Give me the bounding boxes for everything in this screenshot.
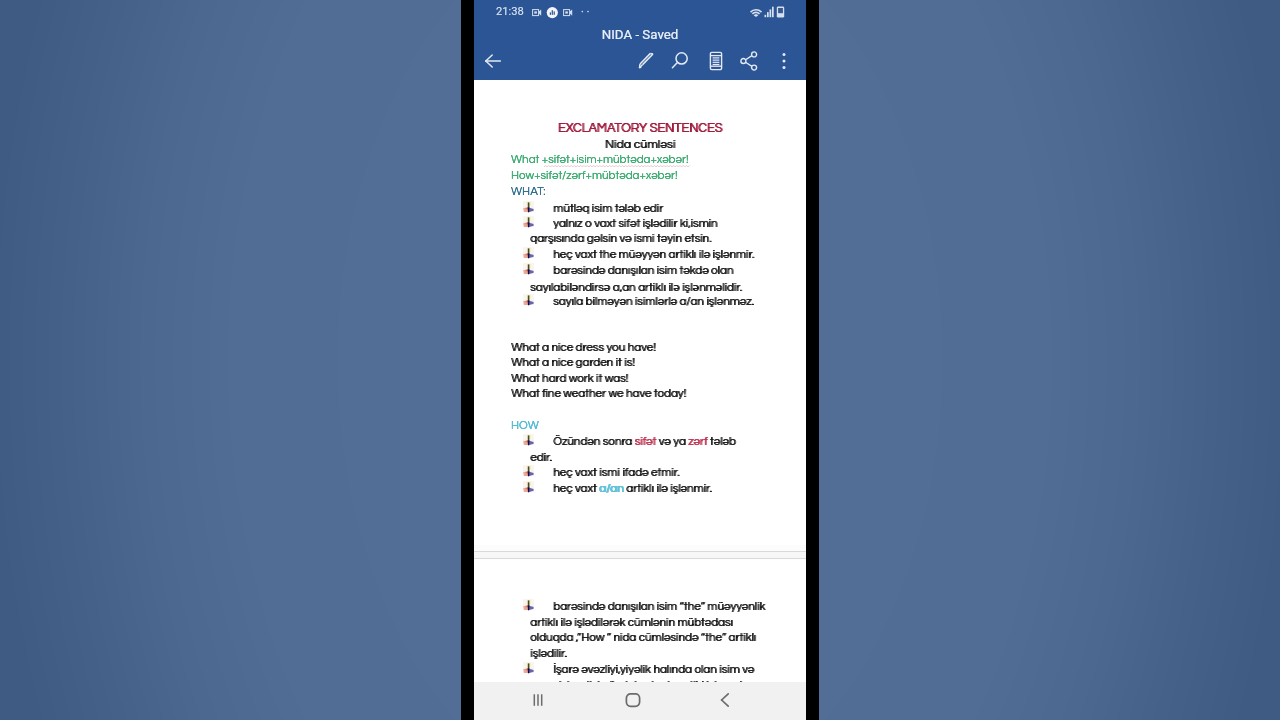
staticText: What a nice dress you have! [512, 341, 657, 353]
staticText: İşarə əvəzliyi,yiyəlik halında olan isim… [554, 663, 755, 675]
staticText: onun işləndiyi cümlələrdə də artikl işlə… [530, 679, 748, 691]
staticText: sayılabilәndirsә a,an artiklı ilә işlәnm… [531, 279, 743, 295]
staticText: artiklı ilə işlədilərək cümlənin mübtəda… [530, 616, 733, 628]
staticText: sayıla bilməyən isimlərlə a/an işlənməz. [553, 295, 754, 307]
staticText: What fine weather we have today! [512, 387, 687, 399]
staticText: EXCLAMATORY SENTENCES [475, 122, 807, 135]
staticText: barəsində danışılan isim “the” müəyyənli… [554, 600, 767, 612]
staticText: onun işləndiyi cümlələrdə də artikl işlə… [531, 679, 749, 691]
staticText: mütləq isim tələb edir [554, 202, 664, 214]
staticText: What a nice garden it is! [511, 356, 635, 368]
staticText: Özündən sonra sifət və ya zərf tələb [554, 435, 737, 447]
button[interactable]: Home [619, 682, 663, 720]
staticText: mütləq isim tələb edir [553, 202, 663, 214]
staticText: sayıla bilməyən isimlərlə a/an işlənməz. [554, 295, 755, 307]
staticText: What +sifət+isim+mübtəda+xəbər! [511, 153, 689, 165]
staticText: Nida cümləsi [475, 138, 807, 151]
staticText: olduqda ,”How ” nida cümləsində “the” ar… [530, 631, 756, 643]
staticText: barəsində danışılan isim “the” müəyyənli… [553, 600, 766, 612]
staticText: sayılabilәndirsә a,an artiklı ilә işlәnm… [530, 279, 742, 295]
staticText: How+sifət/zərf+mübtəda+xəbər! [511, 169, 678, 181]
staticText: heç vaxt the müəyyən artiklı ilə işlənmi… [554, 248, 755, 260]
staticText: sayılabilәndirsә a,an artiklı ilә işlәnm… [530, 279, 742, 295]
staticText: yalnız o vaxt sifət işlədilir ki,ismin [553, 217, 718, 229]
staticText: qarşısında gəlsin və ismi təyin etsin. [530, 232, 712, 244]
staticText: 21:38 [496, 5, 524, 18]
staticText: Özündən sonra sifət və ya zərf tələb [553, 435, 736, 447]
staticText: What fine weather we have today! [511, 387, 686, 399]
staticText: barəsində danışılan isim təkdə olan [553, 264, 734, 276]
staticText: What a nice dress you have! [511, 341, 656, 353]
button[interactable]: Back [479, 47, 507, 75]
staticText: What hard work it was! [511, 372, 629, 384]
staticText: EXCLAMATORY SENTENCES [474, 122, 806, 135]
staticText: How+sifət/zərf+mübtəda+xəbər! [511, 169, 678, 181]
staticText: artiklı ilə işlədilərək cümlənin mübtəda… [530, 616, 733, 628]
staticText: işlədilir. [530, 647, 567, 659]
staticText: olduqda ,”How ” nida cümləsində “the” ar… [531, 631, 757, 643]
staticText: What a nice garden it is! [512, 356, 636, 368]
staticText: işlədilir. [530, 647, 567, 659]
staticText: edir. [530, 451, 552, 463]
staticText: qarşısında gəlsin və ismi təyin etsin. [530, 232, 712, 244]
staticText: What fine weather we have today! [511, 387, 686, 399]
button[interactable]: Mobile view [702, 47, 730, 75]
button[interactable]: Search [666, 47, 694, 75]
staticText: EXCLAMATORY SENTENCES [474, 122, 806, 135]
staticText: heç vaxt ismi ifadə etmir. [553, 466, 680, 478]
staticText: İşarə əvəzliyi,yiyəlik halında olan isim… [553, 663, 754, 675]
staticText: Nida cümləsi [474, 138, 806, 151]
staticText: heç vaxt the müəyyən artiklı ilə işlənmi… [553, 248, 754, 260]
staticText: barəsində danışılan isim təkdə olan [553, 264, 734, 276]
staticText: What a nice garden it is! [511, 356, 635, 368]
staticText: What a nice dress you have! [511, 341, 656, 353]
staticText: işlədilir. [531, 647, 568, 659]
staticText: What +sifət+isim+mübtəda+xəbər! [511, 153, 689, 165]
staticText: onun işləndiyi cümlələrdə də artikl işlə… [530, 679, 748, 691]
staticText: What hard work it was! [511, 372, 629, 384]
button[interactable]: Share [735, 47, 763, 75]
staticText: Özündən sonra sifət və ya zərf tələb [553, 435, 736, 447]
button[interactable]: Edit [633, 47, 661, 75]
staticText: heç vaxt ismi ifadə etmir. [553, 466, 680, 478]
staticText: WHAT: [511, 185, 546, 197]
staticText: HOW [511, 419, 539, 431]
staticText: heç vaxt a/an artiklı ilə işlənmir. [553, 482, 712, 494]
staticText: yalnız o vaxt sifət işlədilir ki,ismin [553, 217, 718, 229]
staticText: HOW [511, 419, 539, 431]
button[interactable]: Recents [526, 682, 570, 720]
staticText: heç vaxt a/an artiklı ilə işlənmir. [553, 482, 712, 494]
staticText: yalnız o vaxt sifət işlədilir ki,ismin [554, 217, 719, 229]
staticText: What hard work it was! [512, 372, 630, 384]
staticText: İşarə əvəzliyi,yiyəlik halında olan isim… [553, 663, 754, 675]
staticText: Nida cümləsi [474, 138, 806, 151]
button[interactable]: More options [770, 47, 798, 75]
staticText: edir. [531, 451, 553, 463]
staticText: edir. [530, 451, 552, 463]
staticText: heç vaxt a/an artiklı ilə işlənmir. [554, 482, 713, 494]
staticText: artiklı ilə işlədilərək cümlənin mübtəda… [531, 616, 734, 628]
staticText: barəsində danışılan isim təkdə olan [554, 264, 735, 276]
staticText: sayıla bilməyən isimlərlə a/an işlənməz. [553, 295, 754, 307]
staticText: NIDA - Saved [474, 27, 806, 43]
staticText: olduqda ,”How ” nida cümləsində “the” ar… [530, 631, 756, 643]
staticText: heç vaxt the müəyyən artiklı ilə işlənmi… [553, 248, 754, 260]
button[interactable]: Back [711, 682, 755, 720]
staticText: qarşısında gəlsin və ismi təyin etsin. [531, 232, 713, 244]
staticText: heç vaxt ismi ifadə etmir. [554, 466, 681, 478]
staticText: mütləq isim tələb edir [553, 202, 663, 214]
staticText: barəsində danışılan isim “the” müəyyənli… [553, 600, 766, 612]
staticText: WHAT: [511, 185, 546, 197]
